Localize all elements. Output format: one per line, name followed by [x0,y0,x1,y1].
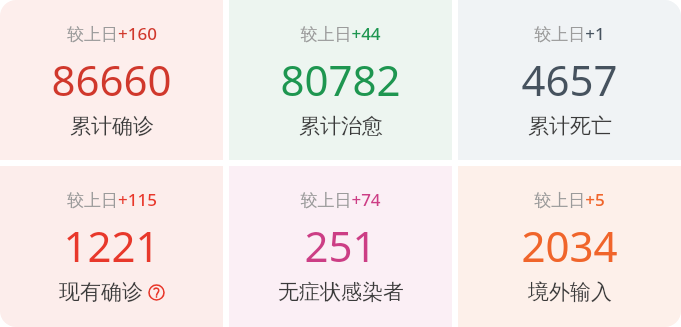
button[interactable]: 较上日+115 [0,166,223,327]
button[interactable]: 较上日+5 [458,166,681,327]
staticText: 现有确诊 [59,279,143,305]
staticText: 1221 [63,217,160,274]
staticText: 4657 [521,51,618,108]
staticText: 累计死亡 [528,113,612,139]
button[interactable]: 较上日+160 [0,0,223,160]
staticText: 较上日+160 [67,22,157,45]
staticText: 80782 [280,51,401,108]
button[interactable]: 较上日+44 [229,0,452,160]
staticText: 较上日+5 [534,188,605,211]
button[interactable]: 较上日+1 [458,0,681,160]
staticText: 境外输入 [528,279,612,305]
staticText: 较上日+74 [300,188,381,211]
staticText: 较上日+1 [534,22,605,45]
staticText: 较上日+44 [300,22,381,45]
staticText: 无症状感染者 [278,279,404,305]
staticText: 累计确诊 [70,113,154,139]
staticText: 2034 [521,217,618,274]
staticText: 251 [304,217,377,274]
staticText: 86660 [51,51,172,108]
staticText: 较上日+115 [67,188,157,211]
button[interactable]: 现有确诊说明 [148,284,165,301]
button[interactable]: 较上日+74 [229,166,452,327]
staticText: 累计治愈 [299,113,383,139]
